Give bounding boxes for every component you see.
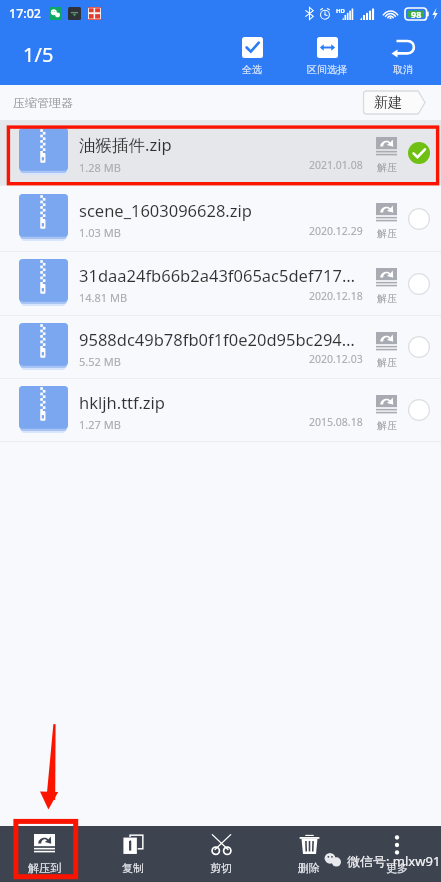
staticText: 14.81 MB	[79, 290, 128, 305]
button[interactable]: 复制	[89, 826, 177, 882]
button[interactable]: 删除	[265, 826, 353, 882]
button[interactable]: hkljh.ttf.zip	[0, 379, 441, 441]
staticText: 更多	[386, 861, 408, 875]
button[interactable]: 解压到	[0, 826, 89, 882]
staticText: 油猴插件.zip	[79, 133, 172, 156]
staticText: 解压到	[28, 861, 61, 875]
button[interactable]: 选择	[404, 204, 434, 234]
button[interactable]: 区间选择	[289, 26, 365, 85]
staticText: 2020.12.29	[309, 224, 363, 238]
staticText: 解压	[377, 292, 397, 305]
button[interactable]: 解压	[376, 137, 397, 174]
staticText: 9588dc49b78fb0f1f0e20d95bc294abcdef.zip	[79, 328, 355, 350]
staticText: 压缩管理器	[13, 95, 73, 110]
staticText: 删除	[298, 861, 320, 875]
staticText: 1.28 MB	[79, 160, 121, 175]
staticText: 1/5	[23, 41, 54, 68]
staticText: 1.03 MB	[79, 225, 121, 240]
staticText: hkljh.ttf.zip	[79, 391, 165, 413]
staticText: scene_1603096628.zip	[79, 199, 252, 221]
button[interactable]: 解压	[376, 268, 397, 305]
staticText: 解压	[377, 227, 397, 240]
staticText: 5.52 MB	[79, 354, 121, 369]
staticText: 31daa24fb66b2a43f065ac5def7177abcdef.zip	[79, 264, 355, 286]
button[interactable]: 已选中	[404, 138, 434, 168]
staticText: 2020.12.18	[309, 289, 363, 303]
staticText: 新建	[374, 94, 402, 112]
button[interactable]: 选择	[404, 269, 434, 299]
staticText: 全选	[242, 63, 262, 76]
button[interactable]: 9588dc49b78fb0f1f0e20d95bc294abcdef.zip	[0, 316, 441, 378]
button[interactable]: scene_1603096628.zip	[0, 186, 441, 251]
staticText: 解压	[377, 419, 397, 432]
staticText: 98	[411, 8, 422, 20]
staticText: 取消	[393, 63, 413, 76]
staticText: 2021.01.08	[309, 158, 363, 172]
staticText: 微信号: mlxw91	[347, 852, 441, 870]
button[interactable]: 31daa24fb66b2a43f065ac5def7177abcdef.zip	[0, 252, 441, 315]
button[interactable]: 选择	[404, 332, 434, 362]
button[interactable]: 解压	[376, 395, 397, 432]
button[interactable]: 全选	[215, 26, 289, 85]
staticText: HD	[336, 7, 345, 15]
button[interactable]: 剪切	[177, 826, 265, 882]
button[interactable]: 解压	[376, 332, 397, 369]
staticText: 2015.08.18	[309, 415, 363, 429]
button[interactable]: 选择	[404, 395, 434, 425]
staticText: 1.27 MB	[79, 417, 121, 432]
staticText: 17:02	[9, 5, 42, 22]
button[interactable]: 解压	[376, 203, 397, 240]
button[interactable]: 更多	[353, 826, 441, 882]
staticText: 剪切	[210, 861, 232, 875]
staticText: 区间选择	[307, 63, 347, 76]
button[interactable]: 取消	[365, 26, 441, 85]
staticText: 复制	[122, 861, 144, 875]
staticText: 解压	[377, 356, 397, 369]
button[interactable]: 油猴插件.zip	[0, 120, 441, 185]
button[interactable]: 新建	[363, 91, 426, 114]
staticText: 2020.12.03	[309, 352, 363, 366]
staticText: 解压	[377, 161, 397, 174]
